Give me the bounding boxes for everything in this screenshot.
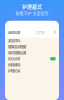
- staticText: 视频通话: [8, 62, 20, 67]
- button[interactable]: 定位共享: [5, 56, 59, 62]
- staticText: 已开启: [36, 30, 45, 34]
- staticText: 护理模式: [22, 3, 42, 10]
- button[interactable]: 健康监测提醒: [5, 44, 59, 50]
- button[interactable]: 紧急呼叫: [5, 38, 59, 44]
- staticText: 紧急呼叫: [8, 38, 20, 43]
- staticText: 健康监测提醒: [8, 44, 26, 49]
- button[interactable]: 用药提醒设置: [5, 50, 59, 56]
- staticText: 定位共享: [8, 56, 20, 61]
- staticText: 用药提醒设置: [8, 50, 26, 55]
- staticText: 护理记录: [8, 68, 20, 73]
- button[interactable]: 护理记录: [5, 68, 59, 74]
- staticText: 智能守护 关爱陪伴: [15, 11, 48, 17]
- staticText: 基础设置: [8, 30, 20, 35]
- button[interactable]: 视频通话: [5, 62, 59, 68]
